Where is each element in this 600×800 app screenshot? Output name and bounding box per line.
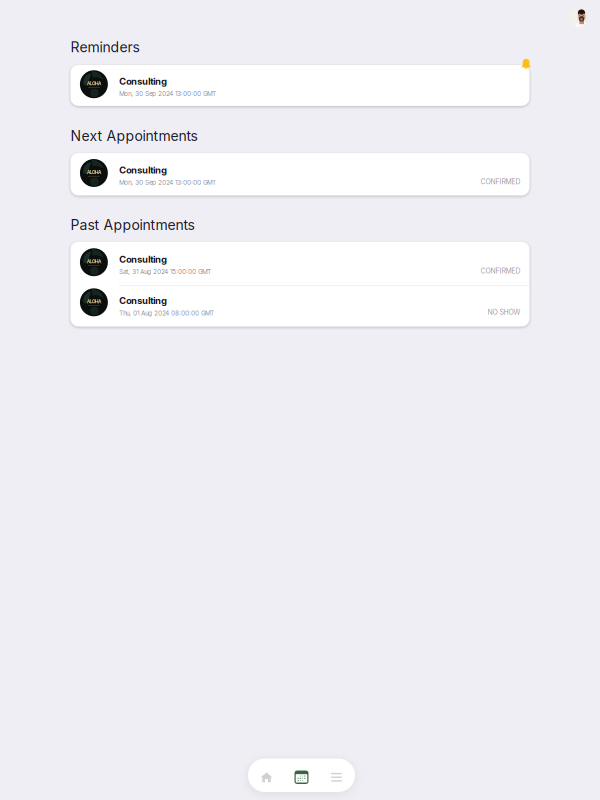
- staticText: Consulting: [119, 254, 167, 265]
- button[interactable]: ALOHA: [70, 153, 529, 195]
- staticText: ALOHA: [87, 81, 101, 86]
- staticText: ALOHA: [87, 299, 101, 304]
- staticText: CONFIRMED: [480, 267, 520, 275]
- button[interactable]: ALOHA: [70, 242, 529, 285]
- staticText: Consulting: [119, 76, 167, 87]
- staticText: NO SHOW: [487, 308, 520, 316]
- staticText: Next Appointments: [70, 127, 197, 144]
- button[interactable]: Profile: [568, 7, 588, 27]
- staticText: Mon, 30 Sep 2024 13:00:00 GMT: [119, 90, 216, 98]
- button[interactable]: Menu: [324, 759, 349, 792]
- button[interactable]: ALOHA: [70, 65, 529, 106]
- button[interactable]: Home: [254, 759, 279, 792]
- staticText: Consulting: [119, 295, 167, 306]
- staticText: Consulting: [119, 164, 167, 176]
- staticText: ALOHA: [87, 259, 101, 264]
- staticText: Mon, 30 Sep 2024 13:00:00 GMT: [119, 179, 216, 186]
- staticText: CONFIRMED: [480, 177, 520, 186]
- button[interactable]: Calendar: [289, 759, 314, 792]
- staticText: Past Appointments: [70, 216, 194, 233]
- button[interactable]: ALOHA: [70, 286, 529, 326]
- staticText: Reminders: [70, 39, 139, 55]
- staticText: ALOHA: [87, 169, 101, 175]
- staticText: Sat, 31 Aug 2024 15:00:00 GMT: [119, 268, 211, 276]
- staticText: Thu, 01 Aug 2024 08:00:00 GMT: [119, 309, 214, 317]
